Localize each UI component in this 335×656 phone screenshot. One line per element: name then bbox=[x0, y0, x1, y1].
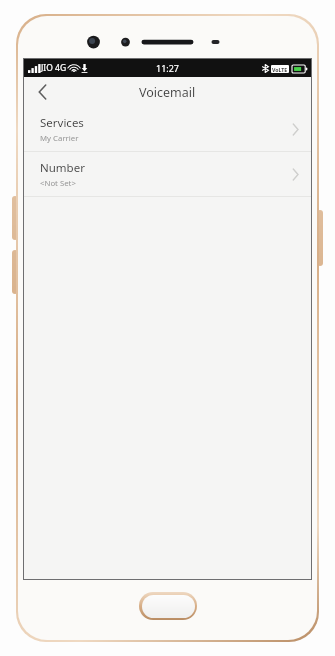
staticText: Voicemail bbox=[139, 84, 196, 101]
staticText: JIO 4G bbox=[41, 62, 67, 74]
staticText: My Carrier bbox=[40, 133, 79, 144]
staticText: Services bbox=[40, 115, 84, 131]
button[interactable]: Services bbox=[24, 107, 311, 151]
button[interactable]: Home bbox=[139, 592, 197, 620]
staticText: 11:27 bbox=[156, 62, 180, 74]
button[interactable]: Number bbox=[24, 152, 311, 196]
staticText: <Not Set> bbox=[40, 178, 76, 189]
button[interactable]: Back bbox=[24, 77, 60, 107]
staticText: Number bbox=[40, 160, 85, 176]
staticText: VoLTE bbox=[272, 66, 288, 73]
